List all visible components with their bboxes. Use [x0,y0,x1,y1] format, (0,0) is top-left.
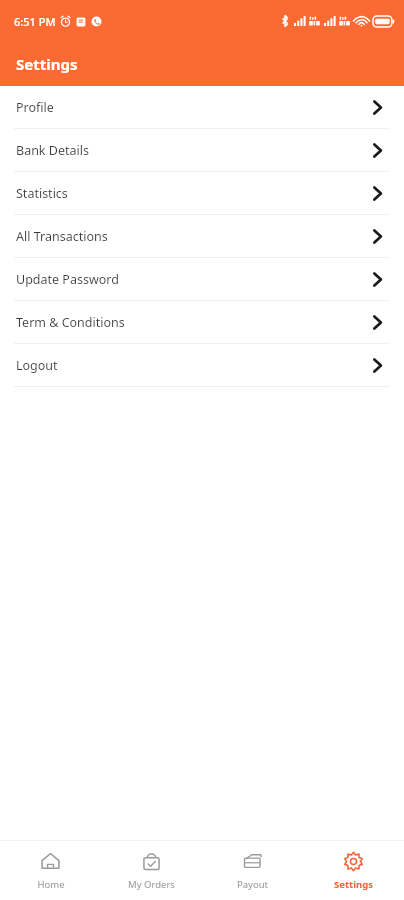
staticText: Logout [16,357,373,374]
staticText: Settings [334,878,373,891]
button[interactable]: My Orders [101,841,202,900]
button[interactable]: Logout [0,344,404,387]
staticText: Home [37,878,65,891]
button[interactable]: Update Password [0,258,404,301]
staticText: All Transactions [16,228,373,245]
staticText: Settings [16,54,78,74]
button[interactable]: Home [0,841,101,900]
staticText: My Orders [128,878,175,891]
staticText: Term & Conditions [16,314,373,331]
button[interactable]: Payout [202,841,303,900]
button[interactable]: Statistics [0,172,404,215]
staticText: 6:51 PM [14,14,56,29]
button[interactable]: All Transactions [0,215,404,258]
button[interactable]: Settings [303,841,404,900]
staticText: Statistics [16,185,373,202]
staticText: Profile [16,99,373,116]
button[interactable]: Bank Details [0,129,404,172]
staticText: Bank Details [16,142,373,159]
button[interactable]: Term & Conditions [0,301,404,344]
staticText: Payout [237,878,268,891]
button[interactable]: Profile [0,86,404,129]
staticText: Update Password [16,271,373,288]
